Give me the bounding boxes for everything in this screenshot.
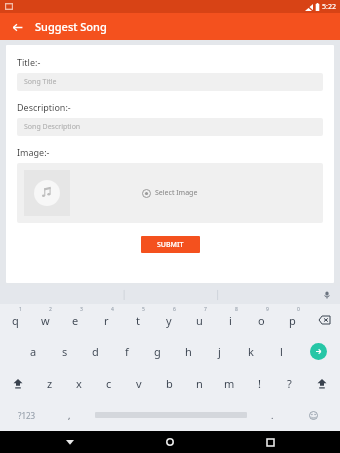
button[interactable]: . xyxy=(257,399,287,431)
staticText: SUBMIT xyxy=(157,240,184,250)
staticText: ? xyxy=(287,376,292,391)
button[interactable]: 1 xyxy=(0,304,30,335)
staticText: 7 xyxy=(204,306,207,313)
button[interactable]: SUBMIT xyxy=(141,236,200,253)
button[interactable]: c xyxy=(94,367,124,399)
button[interactable]: g xyxy=(142,335,173,367)
staticText: ! xyxy=(258,376,261,391)
staticText: n xyxy=(196,376,203,391)
button[interactable]: m xyxy=(214,367,244,399)
button[interactable]: f xyxy=(111,335,142,367)
staticText: k xyxy=(248,344,254,359)
staticText: i xyxy=(229,313,232,328)
staticText: Song Title xyxy=(24,77,57,87)
button[interactable]: Emoji xyxy=(287,399,340,431)
button[interactable]: x xyxy=(64,367,94,399)
button[interactable]: n xyxy=(184,367,214,399)
staticText: z xyxy=(47,376,53,391)
button[interactable]: b xyxy=(154,367,184,399)
staticText: . xyxy=(271,409,274,421)
button[interactable]: Recents xyxy=(260,432,280,452)
staticText: d xyxy=(92,344,99,359)
staticText: v xyxy=(136,376,142,391)
staticText: 9 xyxy=(266,306,269,313)
button[interactable]: j xyxy=(204,335,235,367)
staticText: w xyxy=(41,313,50,328)
button[interactable]: ?123 xyxy=(0,399,54,431)
button[interactable]: Home xyxy=(160,432,180,452)
staticText: 4 xyxy=(111,306,114,313)
button[interactable]: Shift xyxy=(304,367,340,399)
staticText: p xyxy=(289,313,296,328)
button[interactable]: 3 xyxy=(60,304,91,335)
staticText: Song Description xyxy=(24,122,81,132)
staticText: u xyxy=(196,313,203,328)
staticText: y xyxy=(166,313,172,328)
staticText: Description:- xyxy=(17,101,71,113)
staticText: 6 xyxy=(173,306,176,313)
button[interactable]: 5 xyxy=(122,304,153,335)
button[interactable]: 7 xyxy=(184,304,215,335)
button[interactable]: l xyxy=(266,335,297,367)
button[interactable]: Space xyxy=(84,399,257,431)
button[interactable]: 4 xyxy=(91,304,122,335)
button[interactable]: Enter xyxy=(297,335,340,367)
staticText: h xyxy=(185,344,192,359)
button[interactable]: z xyxy=(35,367,64,399)
button[interactable]: 9 xyxy=(246,304,277,335)
staticText: Select Image xyxy=(155,188,198,198)
button[interactable]: Voice input xyxy=(320,288,334,302)
staticText: Suggest Song xyxy=(35,19,107,34)
button[interactable]: v xyxy=(124,367,154,399)
staticText: g xyxy=(154,344,161,359)
staticText: s xyxy=(62,344,68,359)
button[interactable]: 0 xyxy=(277,304,308,335)
staticText: 5:22 xyxy=(322,2,336,12)
button[interactable]: d xyxy=(80,335,111,367)
staticText: b xyxy=(166,376,173,391)
staticText: ?123 xyxy=(18,410,36,421)
button[interactable]: Select Image xyxy=(17,163,323,223)
button[interactable]: k xyxy=(235,335,266,367)
staticText: r xyxy=(104,313,109,328)
button[interactable]: Back xyxy=(6,16,28,38)
staticText: 1 xyxy=(19,306,22,313)
button[interactable]: Song Description xyxy=(17,118,323,136)
button[interactable]: ? xyxy=(274,367,304,399)
button[interactable]: Back xyxy=(60,432,80,452)
staticText: l xyxy=(280,344,283,359)
staticText: Image:- xyxy=(17,146,50,158)
staticText: Title:- xyxy=(17,56,41,68)
staticText: 0 xyxy=(297,306,300,313)
staticText: j xyxy=(218,344,221,359)
staticText: f xyxy=(125,344,129,359)
staticText: 5 xyxy=(142,306,145,313)
button[interactable]: a xyxy=(18,335,49,367)
staticText: o xyxy=(258,313,265,328)
button[interactable]: , xyxy=(54,399,84,431)
staticText: e xyxy=(72,313,79,328)
staticText: a xyxy=(30,344,37,359)
staticText: t xyxy=(136,313,140,328)
button[interactable]: Shift xyxy=(0,367,35,399)
staticText: q xyxy=(12,313,19,328)
staticText: m xyxy=(224,376,235,391)
button[interactable]: 2 xyxy=(30,304,60,335)
staticText: x xyxy=(76,376,82,391)
button[interactable]: 8 xyxy=(215,304,246,335)
staticText: 2 xyxy=(49,306,52,313)
button[interactable]: h xyxy=(173,335,204,367)
staticText: 8 xyxy=(235,306,238,313)
button[interactable]: ! xyxy=(244,367,274,399)
staticText: , xyxy=(68,409,71,421)
button[interactable]: Song Title xyxy=(17,73,323,91)
button[interactable]: Backspace xyxy=(308,304,340,335)
staticText: 3 xyxy=(80,306,83,313)
button[interactable]: 6 xyxy=(153,304,184,335)
button[interactable]: s xyxy=(49,335,80,367)
staticText: c xyxy=(106,376,112,391)
